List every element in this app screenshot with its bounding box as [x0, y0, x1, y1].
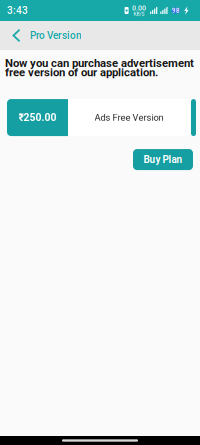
staticText: Buy Plan [143, 154, 182, 165]
button[interactable]: Next plan [191, 99, 196, 136]
staticText: Ads Free Version [94, 112, 163, 123]
staticText: KB/S [134, 11, 145, 17]
staticText: Now you can purchase advertisement free … [5, 56, 194, 79]
button[interactable]: Buy Plan [133, 149, 193, 170]
button[interactable]: ₹250.00 [7, 99, 190, 136]
staticText: 3:43 [7, 5, 28, 16]
staticText: ₹250.00 [18, 111, 56, 124]
staticText: 0.00 [132, 4, 146, 12]
staticText: 98 [172, 7, 180, 14]
staticText: Pro Version [30, 30, 82, 41]
button[interactable]: Back [3, 21, 30, 50]
